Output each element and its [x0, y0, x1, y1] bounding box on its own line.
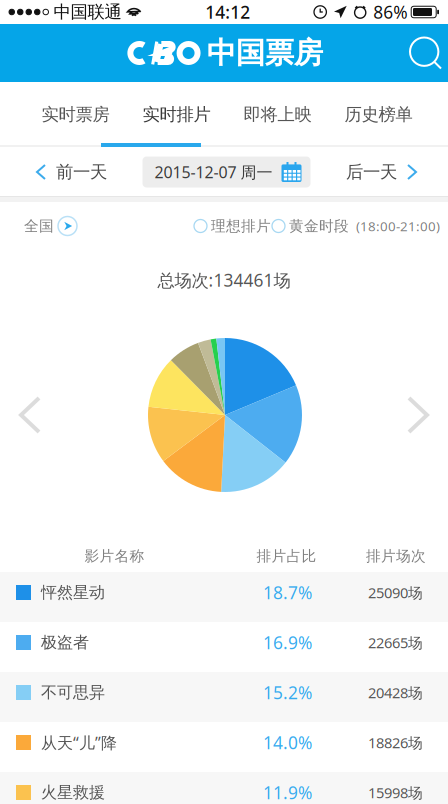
button[interactable]: 火星救援	[0, 772, 448, 804]
staticText: 黄金时段	[289, 217, 349, 235]
button[interactable]: 实时票房	[25, 82, 126, 147]
button[interactable]: 历史榜单	[328, 82, 429, 147]
staticText: 18.7%	[263, 581, 312, 604]
staticText: 火星救援	[41, 783, 105, 802]
button[interactable]: 理想排片	[194, 211, 271, 241]
staticText: 14.0%	[263, 731, 312, 754]
button[interactable]: 搜索	[395, 24, 448, 82]
staticText: 实时票房	[41, 104, 109, 125]
staticText: 即将上映	[243, 104, 311, 125]
staticText: 中国票房	[207, 35, 323, 71]
button[interactable]: 不可思异	[0, 672, 448, 722]
staticText: 2015-12-07 周一	[154, 161, 272, 183]
staticText: 后一天	[346, 161, 397, 183]
button[interactable]: 黄金时段	[271, 211, 448, 241]
staticText: 从天“儿”降	[41, 732, 117, 753]
staticText: 86%	[373, 0, 407, 23]
staticText: 历史榜单	[344, 104, 412, 125]
staticText: 怦然星动	[41, 583, 105, 602]
staticText: 11.9%	[263, 781, 312, 804]
staticText: 16.9%	[263, 631, 312, 654]
staticText: 排片场次	[366, 547, 426, 565]
staticText: 实时排片	[142, 104, 210, 125]
staticText: 18826场	[368, 733, 423, 752]
staticText: 前一天	[56, 161, 107, 183]
button[interactable]: 上一页	[0, 370, 60, 460]
button[interactable]: 全国	[0, 210, 77, 241]
staticText: 20428场	[368, 683, 423, 702]
button[interactable]: 前一天	[0, 151, 107, 193]
staticText: 极盗者	[41, 633, 89, 652]
staticText: 不可思异	[41, 683, 105, 702]
button[interactable]: 后一天	[346, 151, 448, 193]
button[interactable]: 从天“儿”降	[0, 722, 448, 772]
staticText: (18:00-21:00)	[356, 217, 440, 235]
staticText: 总场次:134461场	[157, 268, 290, 291]
staticText: 15998场	[368, 783, 423, 802]
staticText: 排片占比	[256, 547, 316, 565]
button[interactable]: 下一页	[388, 370, 448, 460]
button[interactable]: 怦然星动	[0, 572, 448, 622]
button[interactable]: 极盗者	[0, 622, 448, 672]
staticText: 25090场	[368, 583, 423, 602]
staticText: 22665场	[368, 633, 423, 652]
staticText: 中国联通	[53, 1, 121, 23]
staticText: 15.2%	[263, 681, 312, 704]
staticText: 影片名称	[84, 547, 144, 565]
staticText: 全国	[24, 217, 54, 235]
button[interactable]: 即将上映	[227, 82, 328, 147]
staticText: 14:12	[205, 0, 250, 23]
button[interactable]: 2015-12-07 周一	[142, 156, 310, 187]
staticText: 理想排片	[211, 217, 271, 235]
button[interactable]: 实时排片	[126, 82, 227, 147]
